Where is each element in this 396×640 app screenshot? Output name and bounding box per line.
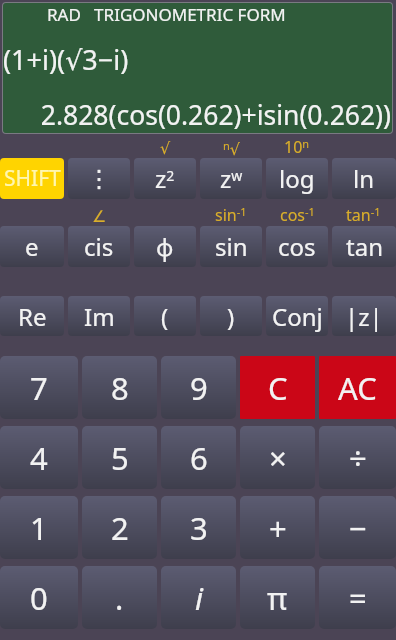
staticText: Re [18,300,47,333]
button[interactable]: 4 [0,426,78,489]
button[interactable]: 0 [0,566,78,629]
staticText: 10n [284,136,310,158]
staticText: + [269,507,287,549]
button[interactable]: AC [319,356,396,419]
button[interactable]: π [240,566,315,629]
button[interactable]: 8 [82,356,157,419]
staticText: i [195,577,203,619]
button[interactable]: Conj [266,296,328,336]
button[interactable]: Re [0,296,64,336]
button[interactable]: 9 [161,356,236,419]
staticText: log [279,162,315,195]
button[interactable]: z2 [134,158,196,199]
staticText: 3 [190,507,208,549]
staticText: π [267,577,288,619]
staticText: 6 [190,437,208,479]
staticText: 0 [30,577,48,619]
staticText: − [349,507,367,549]
button[interactable]: |z| [332,296,396,336]
button[interactable]: φ [134,226,196,267]
staticText: . [115,577,124,619]
staticText: × [269,437,287,479]
button[interactable]: − [319,496,396,559]
staticText: 9 [190,367,208,409]
button[interactable]: 1 [0,496,78,559]
button[interactable]: cis [68,226,130,267]
staticText: cis [84,230,114,263]
staticText: 5 [111,437,129,479]
staticText: n√ [223,138,240,158]
button[interactable]: sin [200,226,262,267]
button[interactable]: × [240,426,315,489]
button[interactable]: ln [332,158,396,199]
button[interactable]: tan [332,226,396,267]
button[interactable]: Im [68,296,130,336]
staticText: tan-1 [346,204,381,226]
button[interactable]: C [240,356,315,419]
staticText: ) [227,300,235,333]
button[interactable]: + [240,496,315,559]
staticText: C [268,367,288,409]
button[interactable]: ) [200,296,262,336]
staticText: cos-1 [280,204,315,226]
button[interactable]: SHIFT [0,158,64,199]
button[interactable]: 6 [161,426,236,489]
staticText: 8 [111,367,129,409]
staticText: √ [160,139,171,158]
staticText: ( [161,300,169,333]
button[interactable]: ( [134,296,196,336]
staticText: cos [278,230,316,263]
staticText: RAD TRIGONOMETRIC FORM [47,3,286,26]
staticText: 1 [30,507,48,549]
staticText: ∠ [92,207,107,226]
staticText: Conj [272,300,323,333]
button[interactable]: 2 [82,496,157,559]
staticText: = [349,577,367,619]
staticText: sin-1 [215,204,247,226]
staticText: AC [338,367,377,409]
button[interactable]: e [0,226,64,267]
staticText: ln [353,162,375,195]
staticText: (1+i)(√3−i) [3,41,129,78]
staticText: z2 [155,162,175,195]
staticText: sin [215,230,248,263]
button[interactable]: ÷ [319,426,396,489]
staticText: e [25,230,39,263]
staticText: |z| [345,300,383,333]
staticText: SHIFT [4,164,61,193]
staticText: 2 [111,507,129,549]
staticText: tan [346,230,383,263]
button[interactable]: ⋮ [68,158,130,199]
staticText: 7 [30,367,48,409]
button[interactable]: log [266,158,328,199]
button[interactable]: 7 [0,356,78,419]
staticText: ÷ [349,437,367,479]
button[interactable]: . [82,566,157,629]
staticText: zw [220,162,243,195]
staticText: Im [84,300,115,333]
button[interactable]: zw [200,158,262,199]
staticText: φ [156,230,174,263]
staticText: 2.828(cos(0.262)+isin(0.262)) [3,97,391,133]
button[interactable]: i [161,566,236,629]
staticText: ⋮ [87,165,111,193]
button[interactable]: = [319,566,396,629]
button[interactable]: cos [266,226,328,267]
staticText: 4 [30,437,48,479]
button[interactable]: 3 [161,496,236,559]
button[interactable]: 5 [82,426,157,489]
